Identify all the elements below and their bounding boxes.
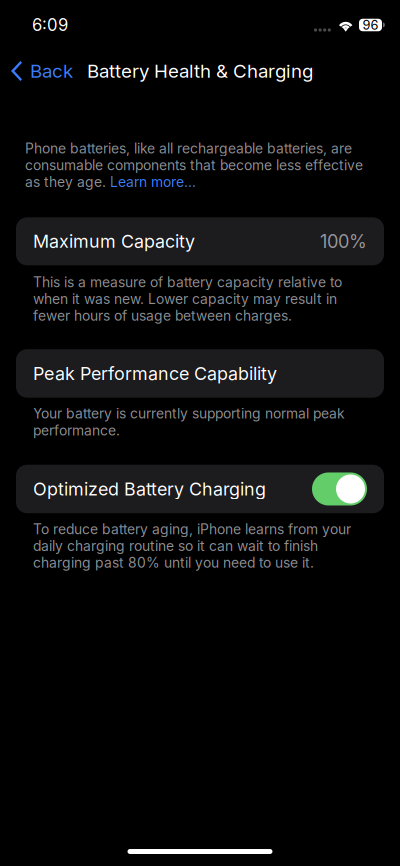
button[interactable]: Optimized Battery Charging <box>0 465 400 513</box>
staticText: Back <box>30 60 73 82</box>
button[interactable]: Learn more… <box>110 174 196 190</box>
staticText: Peak Performance Capability <box>33 363 277 384</box>
button[interactable]: Peak Performance Capability <box>0 349 400 398</box>
staticText: Learn more… <box>110 174 196 190</box>
staticText: Battery Health & Charging <box>87 60 313 82</box>
staticText: This is a measure of battery capacity re… <box>33 274 342 324</box>
button[interactable]: Back <box>0 50 83 92</box>
staticText: as they age. <box>25 174 110 190</box>
staticText: Maximum Capacity <box>33 230 195 252</box>
staticText: Your battery is currently supporting nor… <box>33 405 345 439</box>
staticText: 6:09 <box>32 15 68 35</box>
staticText: Phone batteries, like all rechargeable b… <box>25 140 352 157</box>
staticText: consumable components that become less e… <box>25 157 363 174</box>
staticText: 96 <box>362 17 378 33</box>
staticText: To reduce battery aging, iPhone learns f… <box>33 521 351 571</box>
staticText: 100% <box>320 230 367 252</box>
staticText: Optimized Battery Charging <box>33 478 266 500</box>
